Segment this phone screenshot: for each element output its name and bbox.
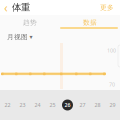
- staticText: ▼: [29, 35, 32, 39]
- staticText: 28: [94, 101, 100, 109]
- button[interactable]: 22: [0, 95, 15, 115]
- button[interactable]: 数据: [60, 16, 120, 29]
- staticText: 22: [4, 101, 10, 109]
- button[interactable]: Back: [0, 0, 12, 14]
- staticText: 更多: [100, 3, 114, 12]
- button[interactable]: 更多: [100, 3, 120, 12]
- button[interactable]: 月视图: [0, 30, 32, 43]
- staticText: ‹: [4, 0, 8, 15]
- staticText: 24: [34, 101, 40, 109]
- staticText: 26: [64, 101, 70, 109]
- button[interactable]: 23: [15, 95, 30, 115]
- staticText: 27: [79, 101, 85, 109]
- staticText: 25: [49, 101, 55, 109]
- staticText: 100: [107, 47, 116, 54]
- button[interactable]: 趋势: [0, 16, 60, 29]
- staticText: 体重: [12, 2, 30, 13]
- staticText: 70: [109, 81, 115, 88]
- staticText: 月视图: [7, 33, 28, 41]
- button[interactable]: 24: [30, 95, 45, 115]
- staticText: 23: [19, 101, 25, 109]
- staticText: 趋势: [23, 18, 37, 27]
- button[interactable]: 28: [90, 95, 105, 115]
- staticText: 数据: [83, 18, 97, 27]
- button[interactable]: 29: [105, 95, 120, 115]
- button[interactable]: 25: [45, 95, 60, 115]
- staticText: 29: [109, 101, 115, 109]
- button[interactable]: 26: [60, 95, 75, 115]
- button[interactable]: 27: [75, 95, 90, 115]
